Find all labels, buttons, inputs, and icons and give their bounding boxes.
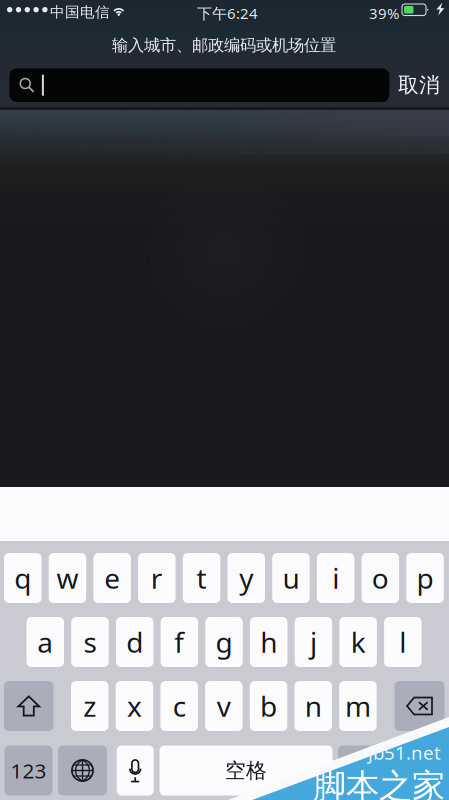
staticText: o (372, 559, 389, 597)
staticText: z (83, 687, 96, 725)
button[interactable]: k (339, 617, 377, 667)
staticText: q (14, 559, 31, 597)
button[interactable]: w (49, 553, 86, 603)
button[interactable]: e (93, 553, 131, 603)
staticText: u (282, 559, 299, 597)
button[interactable]: i (317, 553, 354, 603)
staticText: w (56, 559, 78, 597)
staticText: r (151, 559, 163, 597)
button[interactable]: x (116, 681, 153, 731)
button[interactable]: r (138, 553, 176, 603)
staticText: 搜索 (370, 757, 412, 783)
staticText: n (305, 687, 322, 725)
staticText: m (345, 687, 371, 725)
button[interactable]: s (71, 617, 109, 667)
staticText: c (173, 687, 186, 725)
staticText: s (83, 623, 96, 661)
button[interactable]: Numbers (4, 745, 52, 795)
staticText: 输入城市、邮政编码或机场位置 (112, 35, 336, 55)
button[interactable]: f (161, 617, 198, 667)
staticText: h (260, 623, 277, 661)
button[interactable]: Shift (4, 681, 53, 731)
staticText: i (332, 559, 339, 597)
button[interactable]: v (205, 681, 243, 731)
staticText: k (351, 623, 366, 661)
staticText: jb51.net (368, 740, 441, 765)
button[interactable]: a (26, 617, 64, 667)
staticText: l (399, 623, 406, 661)
button[interactable]: z (71, 681, 108, 731)
button[interactable]: p (406, 553, 444, 603)
button[interactable]: 取消 (394, 68, 444, 102)
button[interactable]: m (339, 681, 377, 731)
staticText: 取消 (398, 72, 440, 98)
button[interactable]: h (250, 617, 287, 667)
staticText: p (416, 559, 433, 597)
staticText: d (126, 623, 143, 661)
staticText: j (310, 623, 317, 661)
button[interactable]: u (272, 553, 310, 603)
button[interactable]: j (295, 617, 332, 667)
staticText: 39% (369, 3, 399, 23)
staticText: 脚本之家 (313, 766, 445, 800)
staticText: b (260, 687, 277, 725)
staticText: f (174, 623, 184, 661)
staticText: g (216, 623, 233, 661)
staticText: x (127, 687, 142, 725)
button[interactable]: q (4, 553, 41, 603)
staticText: 中国电信 (50, 3, 110, 21)
button[interactable]: Delete (394, 681, 444, 731)
button[interactable]: Space (159, 745, 332, 795)
button[interactable]: o (362, 553, 399, 603)
staticText: a (37, 623, 53, 661)
button[interactable]: d (116, 617, 153, 667)
button[interactable]: n (294, 681, 332, 731)
button[interactable]: t (183, 553, 220, 603)
button[interactable]: y (227, 553, 265, 603)
staticText: y (239, 559, 253, 597)
staticText: 下午6:24 (197, 3, 258, 23)
staticText: e (104, 559, 120, 597)
staticText: 空格 (225, 757, 267, 783)
button[interactable]: c (160, 681, 198, 731)
button[interactable]: b (250, 681, 287, 731)
button[interactable]: Dictation (117, 745, 154, 795)
staticText: t (197, 559, 207, 597)
staticText: v (217, 687, 231, 725)
button[interactable]: Next keyboard (58, 745, 107, 795)
button[interactable]: Search (338, 745, 444, 795)
staticText: 123 (10, 756, 46, 784)
button[interactable]: g (205, 617, 243, 667)
button[interactable]: l (384, 617, 422, 667)
